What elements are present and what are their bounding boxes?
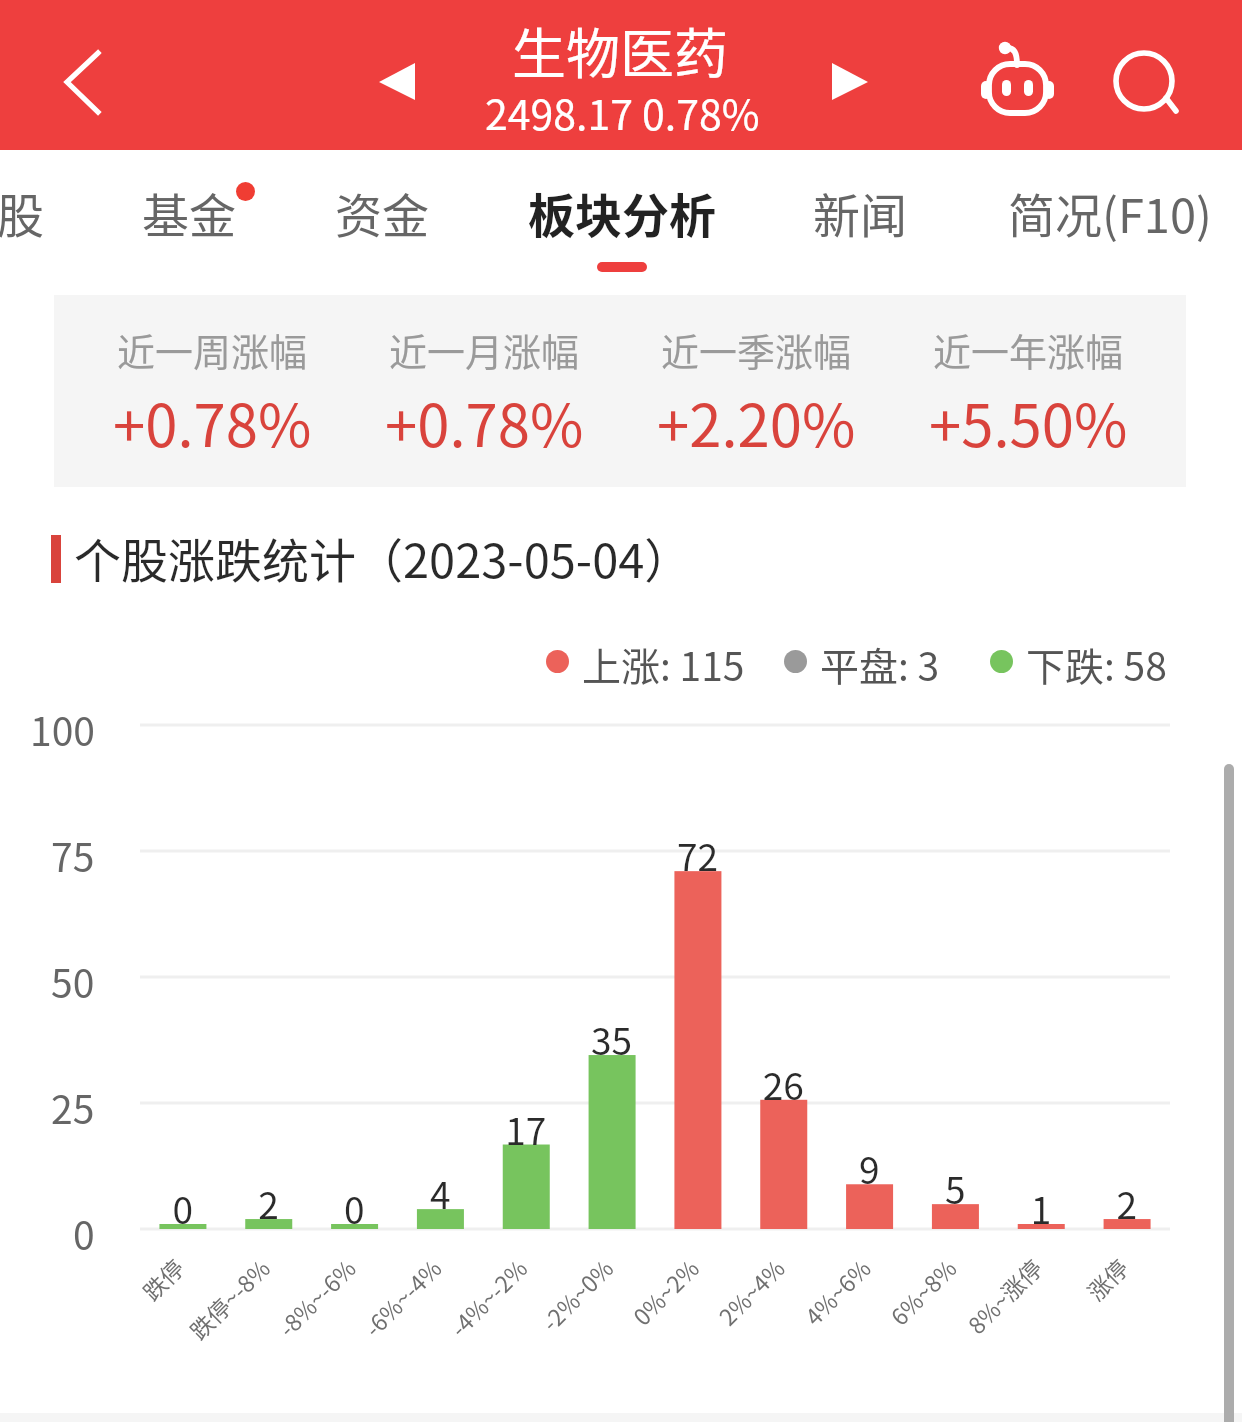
staticText: 近一季涨幅	[661, 322, 852, 377]
button[interactable]: 平盘: 3	[784, 636, 940, 686]
button[interactable]: AI assistant	[955, 22, 1065, 132]
button[interactable]: 近一季涨幅	[620, 295, 892, 487]
button[interactable]: 股	[0, 178, 92, 272]
staticText: 资金	[335, 178, 429, 246]
staticText: 近一周涨幅	[117, 322, 308, 377]
button[interactable]: 基金	[109, 178, 269, 272]
button[interactable]: 板块分析	[507, 178, 737, 272]
button[interactable]: 资金	[302, 178, 462, 272]
button[interactable]: 近一年涨幅	[892, 295, 1164, 487]
staticText: 简况(F10)	[1008, 178, 1212, 246]
staticText: 基金	[142, 178, 236, 246]
button[interactable]: Next sector	[820, 38, 894, 112]
button[interactable]: 下跌: 58	[990, 636, 1167, 686]
staticText: +0.78%	[113, 380, 312, 464]
staticText: 2498.17 0.78%	[485, 82, 760, 141]
staticText: 板块分析	[528, 178, 716, 246]
button[interactable]: 新闻	[780, 178, 940, 272]
button[interactable]: 上涨: 115	[546, 636, 745, 686]
button[interactable]: Search	[1090, 22, 1200, 132]
staticText: +0.78%	[385, 380, 584, 464]
staticText: 上涨: 115	[582, 636, 745, 686]
staticText: 下跌: 58	[1026, 636, 1167, 686]
button[interactable]: 近一月涨幅	[348, 295, 620, 487]
staticText: 股	[0, 178, 44, 246]
staticText: +2.20%	[657, 380, 856, 464]
staticText: 生物医药	[512, 11, 728, 89]
button[interactable]: 简况(F10)	[990, 178, 1230, 272]
staticText: 平盘: 3	[820, 636, 940, 686]
staticText: +5.50%	[929, 380, 1128, 464]
button[interactable]: Back	[30, 30, 122, 122]
button[interactable]: 近一周涨幅	[76, 295, 348, 487]
staticText: 新闻	[813, 178, 907, 246]
staticText: 个股涨跌统计（2023-05-04）	[74, 523, 692, 591]
staticText: 近一年涨幅	[933, 322, 1124, 377]
button[interactable]: Previous sector	[353, 38, 427, 112]
staticText: 近一月涨幅	[389, 322, 580, 377]
